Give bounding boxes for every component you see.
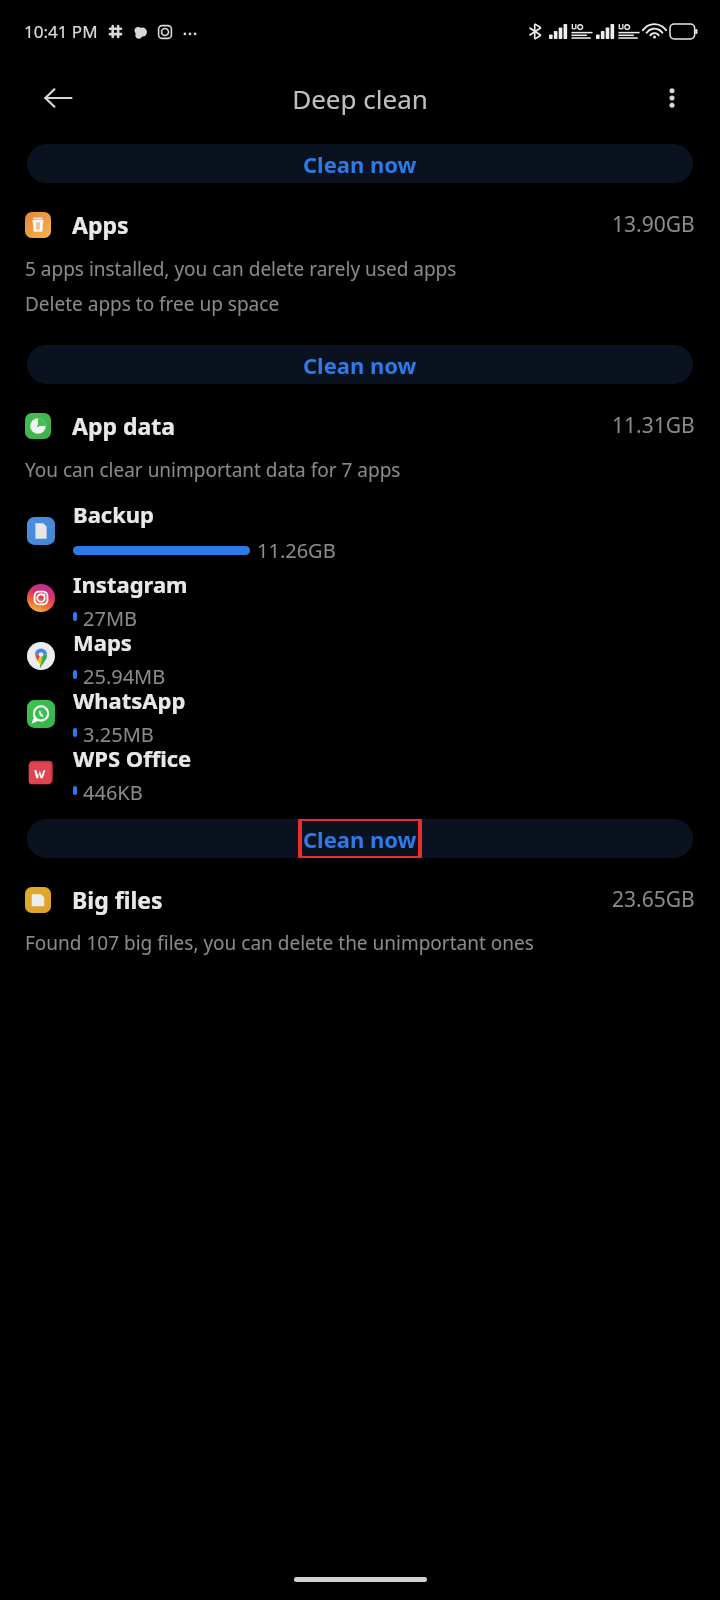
staticText: Backup	[73, 499, 155, 529]
button[interactable]: Backup	[27, 493, 693, 569]
button[interactable]: Maps	[27, 627, 693, 685]
button[interactable]: Clean now	[27, 819, 693, 858]
staticText: WhatsApp	[73, 685, 186, 715]
staticText: 446KB	[83, 779, 143, 801]
staticText: Delete apps to free up space	[25, 291, 280, 317]
button[interactable]: Back	[30, 70, 86, 126]
staticText: Clean now	[303, 350, 417, 380]
staticText: Found 107 big files, you can delete the …	[25, 930, 534, 956]
staticText: Apps	[72, 209, 129, 240]
staticText: Clean now	[303, 149, 417, 179]
staticText: 3.25MB	[83, 721, 154, 743]
staticText: 11.26GB	[257, 537, 336, 564]
staticText: Maps	[73, 627, 132, 657]
staticText: 10:41 PM	[24, 20, 98, 43]
staticText: Instagram	[73, 569, 188, 599]
staticText: Clean now	[303, 824, 417, 854]
staticText: 23.65GB	[612, 885, 695, 914]
button[interactable]: More options	[646, 72, 698, 124]
staticText: Big files	[72, 884, 163, 915]
button[interactable]: Clean now	[27, 345, 693, 384]
staticText: 25.94MB	[83, 663, 166, 685]
staticText: Deep clean	[292, 81, 428, 116]
button[interactable]: WPS Office	[27, 743, 693, 801]
button[interactable]: Big files	[25, 884, 695, 915]
button[interactable]: Apps	[25, 209, 695, 240]
staticText: You can clear unimportant data for 7 app…	[25, 457, 401, 483]
button[interactable]: WhatsApp	[27, 685, 693, 743]
button[interactable]: Clean now	[27, 144, 693, 183]
staticText: 27MB	[83, 605, 138, 627]
staticText: 5 apps installed, you can delete rarely …	[25, 256, 457, 282]
staticText: WPS Office	[73, 743, 192, 773]
staticText: 11.31GB	[612, 411, 695, 440]
button[interactable]: Instagram	[27, 569, 693, 627]
button[interactable]: App data	[25, 410, 695, 441]
staticText: App data	[72, 410, 176, 441]
staticText: 13.90GB	[612, 210, 695, 239]
